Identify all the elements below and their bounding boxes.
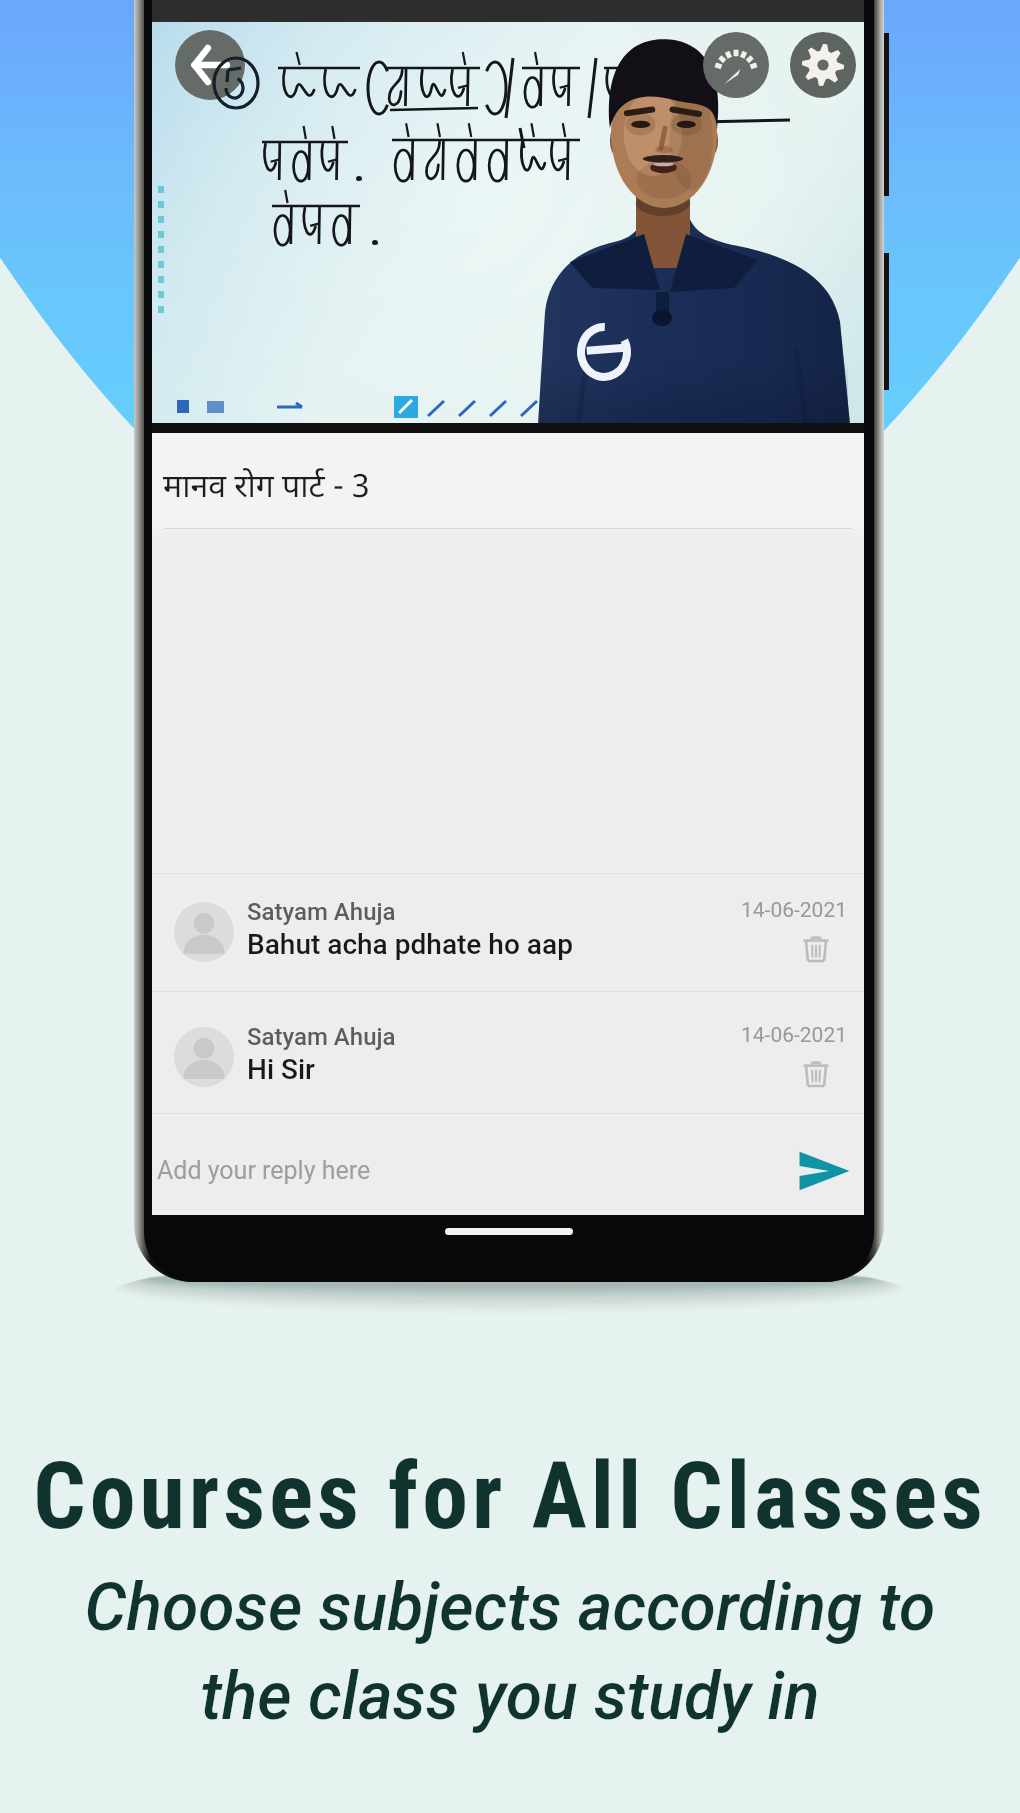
staticText: मानव रोग पार्ट - 3: [163, 463, 370, 507]
staticText: 14-06-2021: [741, 1023, 848, 1048]
staticText: Satyam Ahuja: [247, 1023, 396, 1051]
button[interactable]: Add your reply here: [152, 1114, 864, 1215]
staticText: 14-06-2021: [741, 898, 848, 923]
button[interactable]: Playback speed: [703, 32, 769, 98]
button[interactable]: Satyam Ahuja: [152, 992, 864, 1113]
button[interactable]: Settings: [790, 32, 856, 98]
button[interactable]: Back: [175, 30, 245, 100]
staticText: Hi Sir: [247, 1053, 315, 1086]
button[interactable]: Satyam Ahuja: [152, 874, 864, 991]
staticText: Bahut acha pdhate ho aap: [247, 928, 573, 961]
staticText: Choose subjects according to the class y…: [0, 1569, 1020, 1735]
staticText: Add your reply here: [157, 1156, 371, 1185]
button[interactable]: Send reply: [798, 1150, 850, 1192]
button[interactable]: Delete comment: [801, 934, 831, 964]
button[interactable]: Delete comment: [801, 1059, 831, 1089]
staticText: Satyam Ahuja: [247, 898, 396, 926]
staticText: Courses for All Classes: [0, 1443, 1020, 1551]
